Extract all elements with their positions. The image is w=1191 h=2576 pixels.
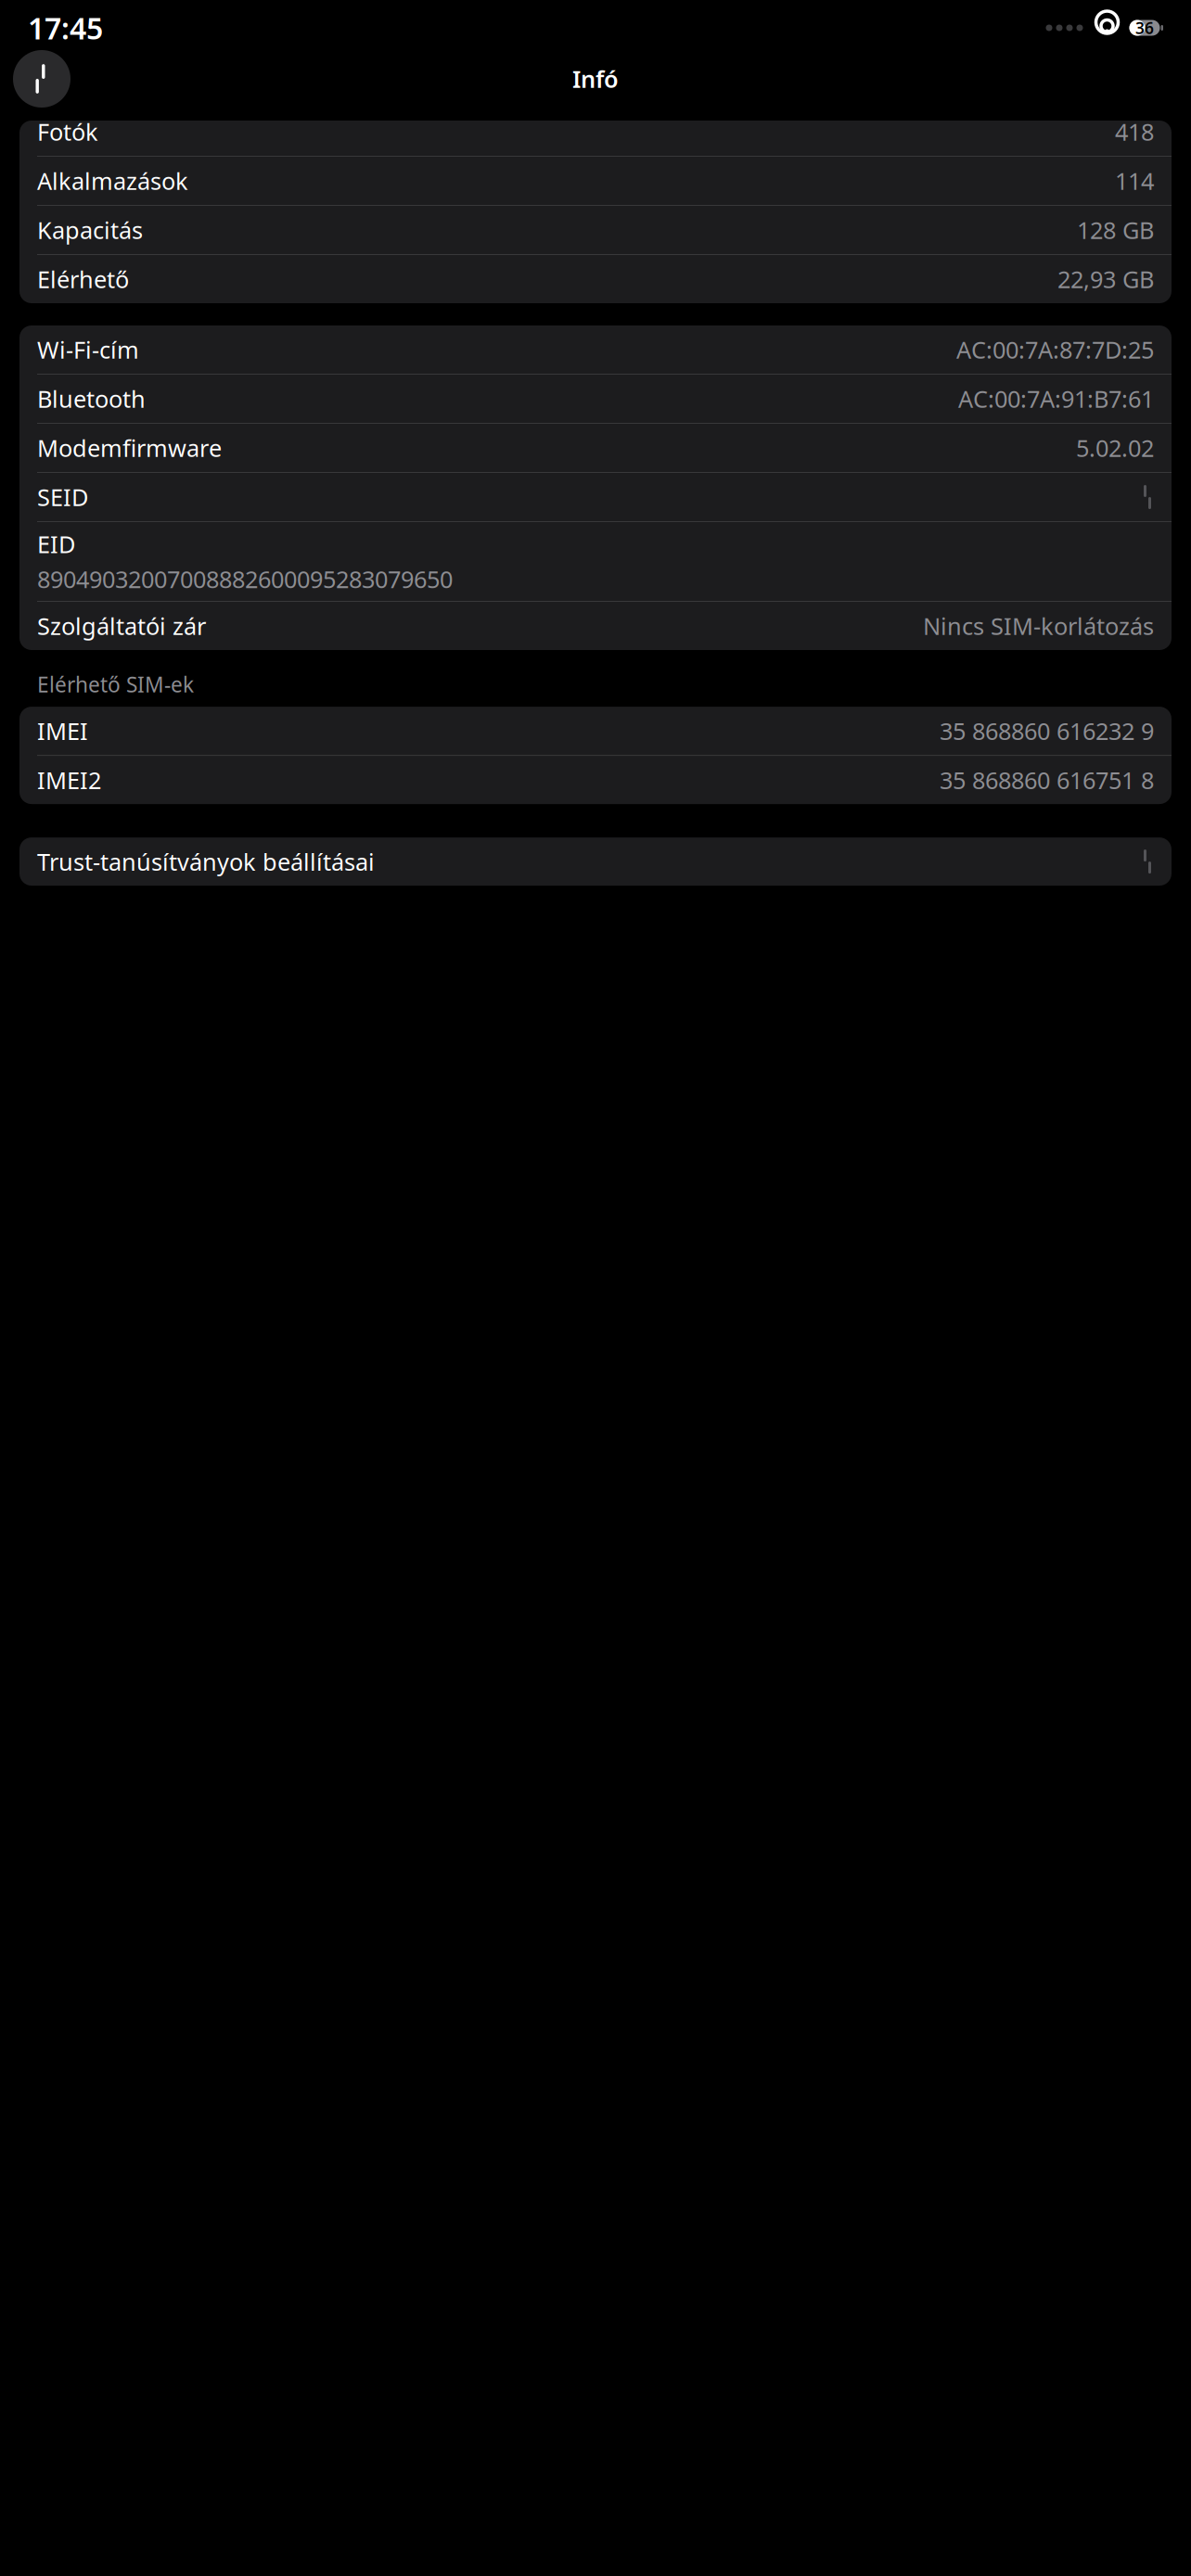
staticText: 5.02.02 <box>1076 432 1154 463</box>
staticText: Modemfirmware <box>37 432 222 463</box>
staticText: 35 868860 616232 9 <box>940 715 1154 746</box>
staticText: AC:00:7A:91:B7:61 <box>958 383 1154 414</box>
staticText: 35 868860 616751 8 <box>940 764 1154 796</box>
button[interactable]: SEID <box>19 473 1172 521</box>
staticText: 114 <box>1115 165 1154 196</box>
button[interactable]: Elérhető <box>19 255 1172 303</box>
button[interactable]: Alkalmazások <box>19 157 1172 205</box>
button[interactable]: Fotók <box>19 108 1172 156</box>
button[interactable]: Modemfirmware <box>19 424 1172 472</box>
button[interactable]: IMEI <box>19 707 1172 755</box>
button[interactable]: Wi-Fi-cím <box>19 325 1172 374</box>
staticText: 36 <box>1135 17 1154 38</box>
button[interactable]: Bluetooth <box>19 375 1172 423</box>
staticText: Infó <box>572 63 619 94</box>
button[interactable]: Vissza <box>13 50 70 108</box>
staticText: IMEI2 <box>37 764 101 796</box>
staticText: EID <box>37 528 75 560</box>
button[interactable]: Kapacitás <box>19 206 1172 254</box>
staticText: 17:45 <box>28 8 103 48</box>
staticText: Wi-Fi-cím <box>37 334 139 365</box>
staticText: SEID <box>37 481 88 513</box>
staticText: Alkalmazások <box>37 165 188 196</box>
staticText: 22,93 GB <box>1057 264 1154 295</box>
staticText: Trust-tanúsítványok beállításai <box>37 846 375 877</box>
staticText: 128 GB <box>1077 214 1154 246</box>
staticText: Bluetooth <box>37 383 146 414</box>
staticText: 418 <box>1115 116 1154 147</box>
staticText: Elérhető SIM-ek <box>37 670 194 698</box>
button[interactable]: EID <box>19 522 1172 601</box>
staticText: 89049032007008882600095283079650 <box>37 563 453 594</box>
staticText: Kapacitás <box>37 214 143 246</box>
staticText: Nincs SIM-korlátozás <box>923 610 1154 641</box>
staticText: AC:00:7A:87:7D:25 <box>956 334 1154 365</box>
button[interactable]: Trust-tanúsítványok beállításai <box>19 837 1172 886</box>
button[interactable]: IMEI2 <box>19 756 1172 804</box>
button[interactable]: Szolgáltatói zár <box>19 602 1172 650</box>
staticText: Szolgáltatói zár <box>37 610 206 641</box>
staticText: Fotók <box>37 116 98 147</box>
staticText: IMEI <box>37 715 88 746</box>
staticText: Elérhető <box>37 264 129 295</box>
